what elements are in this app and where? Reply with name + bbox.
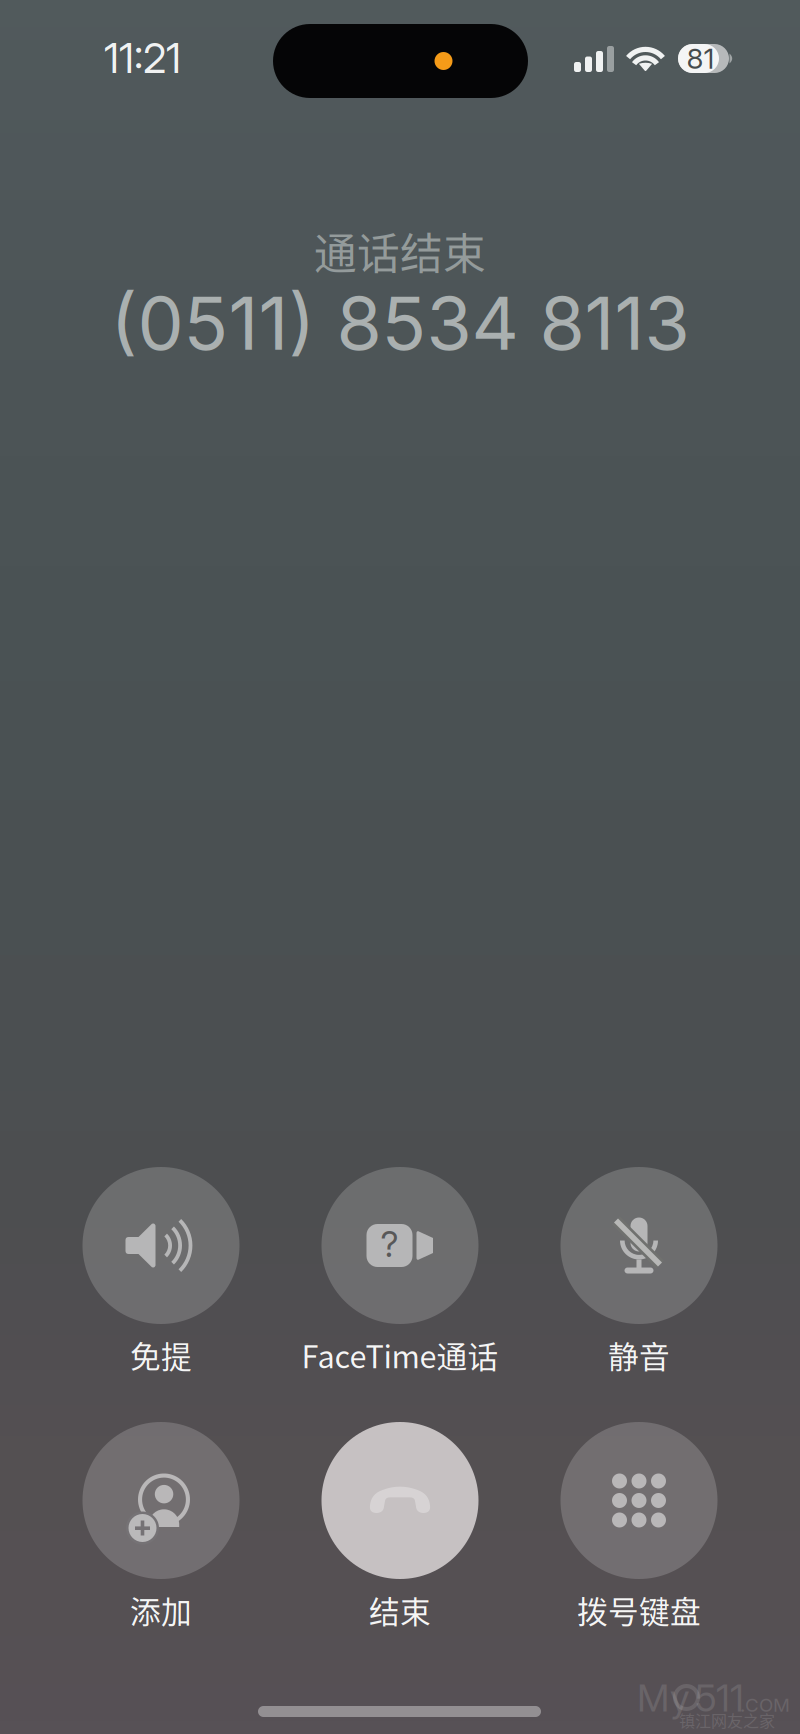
staticText: 拨号键盘	[577, 1588, 701, 1632]
button[interactable]: 结束	[280, 1422, 519, 1625]
staticText: 81	[686, 42, 714, 75]
staticText: 11:21	[104, 33, 181, 83]
staticText: (0511) 8534 8113	[110, 279, 689, 367]
staticText: .COM	[740, 1694, 790, 1716]
staticText: FaceTime通话	[301, 1333, 498, 1377]
staticText: 511	[695, 1675, 744, 1721]
staticText: 添加	[130, 1588, 192, 1632]
staticText: ?	[380, 1223, 398, 1265]
button[interactable]: 拨号键盘	[519, 1422, 758, 1625]
staticText: 静音	[608, 1333, 670, 1377]
staticText: 结束	[369, 1588, 431, 1632]
staticText: My	[637, 1675, 690, 1721]
staticText: 免提	[130, 1333, 192, 1377]
button[interactable]: 静音	[519, 1167, 758, 1370]
staticText: 通话结束	[314, 220, 486, 282]
button[interactable]: 添加	[41, 1422, 280, 1625]
staticText: 镇江网友之家	[679, 1708, 775, 1732]
button[interactable]: ?	[280, 1167, 519, 1370]
button[interactable]: 免提	[41, 1167, 280, 1370]
